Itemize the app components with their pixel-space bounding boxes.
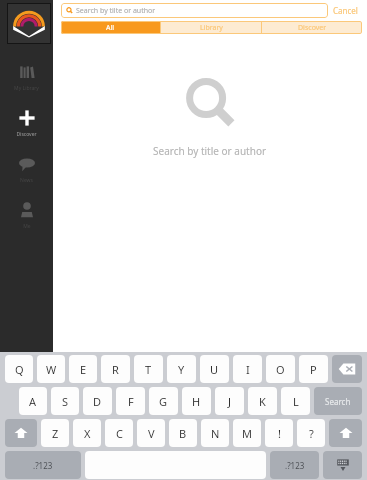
staticText: Cancel bbox=[333, 5, 358, 16]
button[interactable]: Q bbox=[5, 355, 33, 383]
button[interactable]: T bbox=[134, 355, 163, 383]
staticText: O bbox=[276, 362, 285, 377]
button[interactable]: Z bbox=[41, 419, 69, 447]
button[interactable]: P bbox=[299, 355, 328, 383]
staticText: ! bbox=[278, 426, 281, 441]
staticText: .?123 bbox=[285, 460, 305, 471]
staticText: Q bbox=[15, 362, 24, 377]
staticText: D bbox=[93, 394, 102, 409]
staticText: H bbox=[192, 394, 201, 409]
staticText: E bbox=[80, 362, 87, 377]
staticText: M bbox=[242, 426, 252, 441]
button[interactable]: Shift bbox=[5, 419, 37, 447]
button[interactable]: Discover bbox=[0, 106, 53, 140]
staticText: I bbox=[246, 362, 250, 377]
button[interactable]: N bbox=[201, 419, 229, 447]
button[interactable]: G bbox=[149, 387, 178, 415]
staticText: B bbox=[179, 426, 187, 441]
staticText: Me bbox=[23, 223, 31, 230]
button[interactable]: Y bbox=[167, 355, 196, 383]
staticText: News bbox=[20, 177, 33, 184]
staticText: .?123 bbox=[33, 460, 53, 471]
staticText: K bbox=[259, 394, 266, 409]
button[interactable]: All bbox=[61, 21, 160, 34]
button[interactable]: H bbox=[182, 387, 211, 415]
button[interactable]: A bbox=[19, 387, 47, 415]
staticText: Search bbox=[325, 396, 351, 407]
staticText: P bbox=[310, 362, 317, 377]
staticText: R bbox=[112, 362, 119, 377]
staticText: All bbox=[106, 23, 115, 33]
button[interactable]: Audible bbox=[7, 3, 51, 44]
button[interactable]: K bbox=[248, 387, 277, 415]
staticText: Library bbox=[200, 23, 223, 33]
button[interactable]: S bbox=[51, 387, 79, 415]
button[interactable]: News bbox=[0, 152, 53, 186]
button[interactable]: Cancel bbox=[328, 2, 363, 19]
button[interactable]: E bbox=[69, 355, 97, 383]
button[interactable]: B bbox=[169, 419, 197, 447]
button[interactable]: Backspace bbox=[332, 355, 362, 383]
button[interactable]: Search bbox=[314, 387, 362, 415]
button[interactable]: R bbox=[101, 355, 130, 383]
staticText: S bbox=[62, 394, 69, 409]
button[interactable]: ? bbox=[297, 419, 325, 447]
button[interactable]: V bbox=[137, 419, 165, 447]
button[interactable]: Search by tilte or author bbox=[61, 3, 328, 18]
staticText: A bbox=[29, 394, 37, 409]
button[interactable]: Me bbox=[0, 198, 53, 232]
button[interactable]: O bbox=[266, 355, 295, 383]
staticText: Z bbox=[52, 426, 59, 441]
staticText: T bbox=[145, 362, 152, 377]
button[interactable]: X bbox=[73, 419, 101, 447]
staticText: X bbox=[84, 426, 91, 441]
button[interactable]: M bbox=[233, 419, 261, 447]
button[interactable]: Discover bbox=[262, 21, 362, 34]
staticText: C bbox=[116, 426, 123, 441]
staticText: W bbox=[46, 362, 57, 377]
staticText: My Library bbox=[14, 85, 39, 92]
staticText: Y bbox=[178, 362, 185, 377]
button[interactable]: Shift bbox=[329, 419, 362, 447]
button[interactable]: .?123 bbox=[5, 451, 81, 479]
button[interactable]: Library bbox=[161, 21, 261, 34]
staticText: Discover bbox=[16, 131, 37, 138]
button[interactable]: Hide keyboard bbox=[323, 451, 362, 479]
staticText: J bbox=[228, 394, 232, 409]
button[interactable]: ! bbox=[265, 419, 293, 447]
button[interactable]: J bbox=[215, 387, 244, 415]
staticText: V bbox=[148, 426, 155, 441]
staticText: N bbox=[211, 426, 220, 441]
staticText: L bbox=[293, 394, 299, 409]
staticText: Search by tilte or author bbox=[76, 6, 156, 16]
button[interactable]: D bbox=[83, 387, 112, 415]
button[interactable]: L bbox=[281, 387, 310, 415]
button[interactable]: F bbox=[116, 387, 145, 415]
staticText: F bbox=[128, 394, 134, 409]
button[interactable]: I bbox=[233, 355, 262, 383]
button[interactable]: My Library bbox=[0, 60, 53, 94]
staticText: G bbox=[159, 394, 168, 409]
button[interactable]: C bbox=[105, 419, 133, 447]
staticText: U bbox=[210, 362, 219, 377]
button[interactable]: .?123 bbox=[270, 451, 319, 479]
staticText: ? bbox=[309, 426, 314, 441]
staticText: Search by title or author bbox=[153, 144, 267, 158]
staticText: Discover bbox=[298, 23, 327, 33]
button[interactable]: U bbox=[200, 355, 229, 383]
button[interactable]: W bbox=[37, 355, 65, 383]
